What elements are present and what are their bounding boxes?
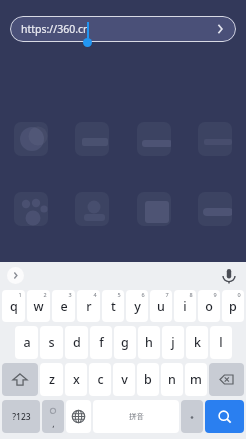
staticText: g — [121, 334, 129, 351]
staticText: r — [86, 298, 92, 315]
staticText: u — [157, 298, 165, 315]
button[interactable]: u — [150, 290, 172, 322]
button[interactable]: Search — [205, 400, 244, 433]
staticText: d — [73, 334, 81, 351]
staticText: a — [23, 334, 31, 351]
staticText: 5 — [117, 291, 121, 298]
staticText: h — [145, 334, 153, 351]
button[interactable]: Voice input — [219, 265, 239, 285]
button[interactable]: v — [113, 363, 135, 396]
button[interactable]: c — [89, 363, 111, 396]
staticText: b — [144, 371, 152, 388]
staticText: q — [10, 298, 18, 315]
staticText: k — [194, 334, 201, 351]
button[interactable]: n — [161, 363, 183, 396]
button[interactable]: e — [52, 290, 75, 322]
button[interactable]: t — [102, 290, 124, 322]
button[interactable]: f — [90, 326, 112, 359]
button[interactable]: s — [40, 326, 63, 359]
button[interactable]: q — [2, 290, 25, 322]
staticText: s — [48, 334, 55, 351]
button[interactable]: h — [138, 326, 160, 359]
button[interactable]: Go — [210, 19, 230, 39]
staticText: e — [60, 298, 68, 315]
staticText: 9 — [213, 291, 217, 298]
staticText: 4 — [93, 291, 97, 298]
staticText: l — [219, 334, 223, 351]
button[interactable]: Backspace — [209, 363, 244, 396]
button[interactable]: 拼音 — [93, 400, 179, 433]
staticText: v — [121, 371, 128, 388]
button[interactable]: x — [65, 363, 87, 396]
staticText: 3 — [68, 291, 72, 298]
staticText: y — [134, 298, 141, 315]
button[interactable]: ?123 — [2, 400, 40, 433]
button[interactable]: i — [174, 290, 196, 322]
button[interactable]: https://360.cn — [10, 16, 236, 42]
button[interactable]: w — [27, 290, 50, 322]
button[interactable]: b — [137, 363, 159, 396]
staticText: f — [99, 334, 104, 351]
staticText: 2 — [43, 291, 47, 298]
button[interactable]: o — [198, 290, 220, 322]
staticText: , — [52, 417, 55, 429]
staticText: 7 — [165, 291, 169, 298]
staticText: 拼音 — [129, 412, 144, 421]
button[interactable]: a — [15, 326, 38, 359]
button[interactable]: y — [126, 290, 148, 322]
button[interactable]: Change language — [66, 400, 91, 433]
button[interactable]: j — [162, 326, 184, 359]
button[interactable]: k — [186, 326, 208, 359]
staticText: x — [73, 371, 80, 388]
staticText: m — [190, 371, 202, 388]
button[interactable]: d — [65, 326, 88, 359]
button[interactable]: Shift — [2, 363, 38, 396]
button[interactable]: Comma and settings — [42, 400, 64, 433]
staticText: 0 — [237, 291, 241, 298]
staticText: j — [171, 334, 175, 351]
staticText: 8 — [189, 291, 193, 298]
staticText: i — [183, 298, 187, 315]
staticText: n — [168, 371, 176, 388]
button[interactable]: m — [185, 363, 207, 396]
button[interactable]: Expand toolbar — [7, 267, 24, 284]
button[interactable]: z — [40, 363, 63, 396]
button[interactable]: p — [222, 290, 244, 322]
staticText: 6 — [141, 291, 145, 298]
staticText: p — [229, 298, 237, 315]
staticText: o — [205, 298, 213, 315]
button[interactable]: Period — [181, 400, 203, 433]
staticText: z — [49, 371, 55, 388]
staticText: https://360.cn — [21, 22, 90, 36]
staticText: 1 — [18, 291, 22, 298]
button[interactable]: r — [77, 290, 100, 322]
button[interactable]: l — [210, 326, 232, 359]
staticText: w — [33, 298, 44, 315]
staticText: t — [111, 298, 116, 315]
staticText: c — [97, 371, 104, 388]
button[interactable]: g — [114, 326, 136, 359]
staticText: ?123 — [12, 411, 31, 423]
